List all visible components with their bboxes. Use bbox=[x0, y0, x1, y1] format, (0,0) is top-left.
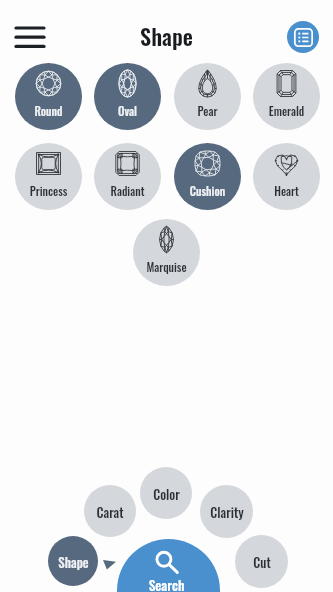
button[interactable]: Emerald bbox=[253, 63, 320, 130]
staticText: Color bbox=[153, 484, 180, 503]
staticText: Emerald bbox=[253, 102, 320, 119]
staticText: Shape bbox=[58, 552, 89, 571]
button[interactable]: Marquise bbox=[133, 219, 200, 286]
staticText: Heart bbox=[253, 182, 320, 199]
button[interactable]: Oval bbox=[94, 63, 161, 130]
staticText: Oval bbox=[94, 102, 161, 119]
button[interactable]: Round bbox=[15, 63, 82, 130]
staticText: Radiant bbox=[94, 182, 161, 199]
staticText: Carat bbox=[96, 502, 124, 521]
button[interactable]: Color bbox=[140, 467, 192, 519]
button[interactable]: Heart bbox=[253, 143, 320, 210]
button[interactable]: Carat bbox=[84, 485, 136, 537]
button[interactable]: Clarity bbox=[200, 485, 253, 538]
staticText: Search bbox=[117, 575, 218, 592]
button[interactable]: Cushion bbox=[174, 143, 241, 210]
button[interactable]: List view bbox=[287, 21, 319, 53]
staticText: Pear bbox=[174, 102, 241, 119]
staticText: Princess bbox=[15, 182, 82, 199]
staticText: Clarity bbox=[210, 502, 244, 521]
button[interactable]: Cut bbox=[235, 535, 288, 588]
button[interactable]: Radiant bbox=[94, 143, 161, 210]
button[interactable]: Pear bbox=[174, 63, 241, 130]
button[interactable]: Menu bbox=[16, 24, 44, 49]
staticText: Marquise bbox=[133, 258, 200, 275]
button[interactable]: Search bbox=[117, 539, 220, 592]
button[interactable]: Princess bbox=[15, 143, 82, 210]
button[interactable]: Shape bbox=[48, 536, 98, 586]
staticText: Round bbox=[15, 102, 82, 119]
staticText: Cushion bbox=[174, 182, 241, 199]
staticText: Shape bbox=[0, 20, 333, 53]
staticText: Cut bbox=[253, 552, 271, 571]
